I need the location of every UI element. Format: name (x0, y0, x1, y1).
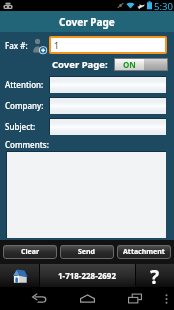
button[interactable]: 1 (51, 38, 165, 52)
button[interactable]: 1-718-228-2692 (40, 264, 135, 287)
staticText: Cover Page: (52, 58, 108, 71)
button[interactable]: Clear (3, 245, 57, 259)
button[interactable]: Back (15, 287, 63, 310)
staticText: 5:30 (154, 0, 173, 11)
staticText: Attachment (123, 247, 165, 257)
button[interactable]: Send (60, 245, 114, 259)
staticText: Send (78, 247, 96, 257)
staticText: Clear (21, 247, 40, 257)
button[interactable] (50, 77, 166, 93)
staticText: Subject: (5, 121, 36, 132)
staticText: Cover Page (59, 15, 115, 29)
staticText: Fax #: (5, 40, 28, 51)
staticText: ? (150, 264, 160, 287)
button[interactable]: Help (136, 264, 174, 287)
staticText: 1 (54, 39, 60, 51)
button[interactable]: More options (159, 287, 174, 310)
staticText: ON (123, 59, 136, 70)
staticText: Company: (5, 100, 44, 111)
button[interactable]: Choose contact (32, 38, 47, 53)
staticText: 1-718-228-2692 (58, 270, 117, 281)
button[interactable] (50, 119, 166, 135)
button[interactable]: Cover page on (115, 59, 167, 70)
button[interactable]: Recent apps (111, 287, 159, 310)
staticText: Attention: (5, 79, 44, 90)
button[interactable]: Home (63, 287, 111, 310)
staticText: Comments: (5, 139, 49, 150)
button[interactable]: Home (0, 264, 39, 287)
button[interactable]: Attachment (117, 245, 171, 259)
button[interactable] (50, 98, 166, 114)
